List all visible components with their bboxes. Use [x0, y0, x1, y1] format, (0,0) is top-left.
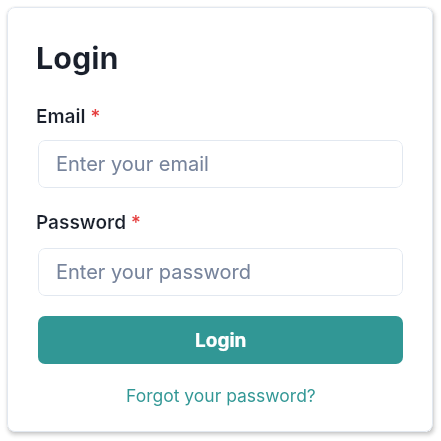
- staticText: Login: [36, 39, 119, 76]
- button[interactable]: [38, 248, 403, 296]
- staticText: Password *: [36, 211, 142, 234]
- staticText: Enter your email: [56, 152, 209, 176]
- button[interactable]: Forgot your password?: [126, 385, 316, 406]
- button[interactable]: [38, 140, 403, 188]
- button[interactable]: [38, 316, 403, 364]
- staticText: Enter your password: [56, 260, 252, 284]
- staticText: Login: [195, 329, 247, 352]
- staticText: Email *: [36, 105, 101, 128]
